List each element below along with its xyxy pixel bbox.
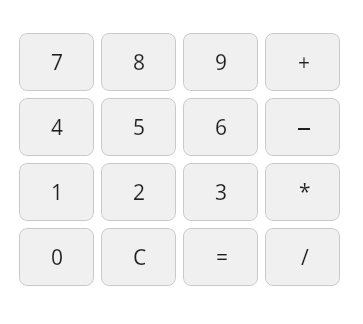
staticText: 0 <box>51 243 64 272</box>
button[interactable]: + <box>265 33 340 91</box>
button[interactable]: 3 <box>183 163 258 221</box>
button[interactable]: 2 <box>101 163 176 221</box>
staticText: 1 <box>51 178 64 207</box>
staticText: 9 <box>215 48 228 77</box>
staticText: = <box>216 243 229 272</box>
staticText: 3 <box>215 178 228 207</box>
button[interactable]: / <box>265 228 340 286</box>
staticText: C <box>133 243 147 272</box>
staticText: + <box>298 48 311 77</box>
button[interactable]: 8 <box>101 33 176 91</box>
staticText: * <box>299 177 311 206</box>
staticText: 4 <box>51 113 64 142</box>
button[interactable]: 5 <box>101 98 176 156</box>
staticText: 8 <box>133 48 146 77</box>
button[interactable]: 4 <box>19 98 94 156</box>
button[interactable] <box>265 98 340 156</box>
button[interactable]: 6 <box>183 98 258 156</box>
button[interactable]: * <box>265 163 340 221</box>
button[interactable]: 9 <box>183 33 258 91</box>
button[interactable]: 7 <box>19 33 94 91</box>
staticText: 6 <box>215 113 228 142</box>
button[interactable]: 1 <box>19 163 94 221</box>
button[interactable]: C <box>101 228 176 286</box>
staticText: 2 <box>133 178 146 207</box>
button[interactable]: 0 <box>19 228 94 286</box>
staticText: 7 <box>51 48 64 77</box>
staticText: / <box>301 243 309 272</box>
staticText: 5 <box>133 113 146 142</box>
button[interactable]: = <box>183 228 258 286</box>
